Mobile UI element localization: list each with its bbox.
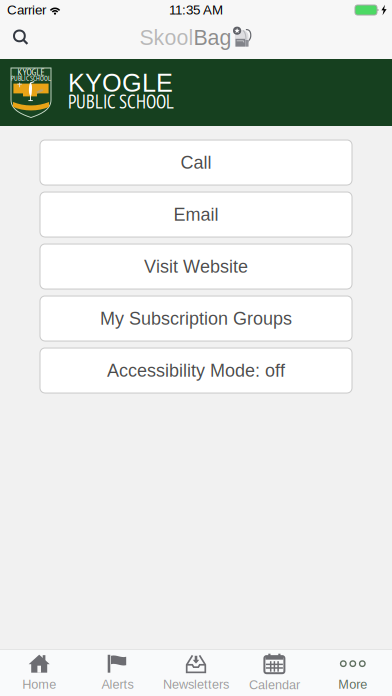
button[interactable]: Calendar (235, 649, 314, 696)
button[interactable]: Call (40, 140, 352, 185)
staticText: Accessibility Mode: off (107, 360, 285, 380)
button[interactable]: Alerts (78, 649, 157, 696)
staticText: More (338, 677, 367, 691)
button[interactable]: Accessibility Mode: off (40, 348, 352, 393)
staticText: PUBLIC SCHOOL (11, 74, 51, 83)
staticText: KYOGLE (17, 66, 44, 78)
button[interactable]: Newsletters (157, 649, 235, 696)
button[interactable]: More (314, 649, 392, 696)
staticText: Newsletters (163, 677, 229, 691)
button[interactable]: Search (0, 24, 39, 54)
staticText: Bag (193, 26, 231, 49)
staticText: Calendar (249, 678, 300, 692)
staticText: Home (22, 677, 56, 691)
button[interactable]: Visit Website (40, 244, 352, 289)
staticText: Visit Website (144, 256, 248, 276)
staticText: Alerts (102, 677, 134, 691)
staticText: My Subscription Groups (100, 308, 292, 328)
staticText: Skool (139, 26, 193, 49)
staticText: Call (180, 152, 211, 172)
button[interactable]: Email (40, 192, 352, 237)
staticText: PUBLIC SCHOOL (68, 89, 174, 114)
staticText: Email (173, 204, 218, 224)
staticText: KYOGLE (68, 69, 173, 97)
button[interactable]: Home (0, 649, 78, 696)
staticText: 11:35 AM (169, 3, 223, 17)
button[interactable]: My Subscription Groups (40, 296, 352, 341)
staticText: Carrier (7, 3, 46, 17)
